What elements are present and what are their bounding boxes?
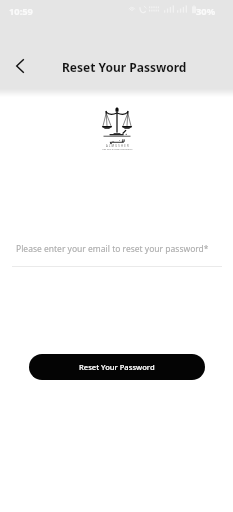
button[interactable]: Please enter your email to reset your pa… — [12, 243, 222, 267]
staticText: 10:59 — [9, 5, 33, 18]
staticText: Law Firm & Legal Consultancy — [102, 148, 133, 151]
staticText: Reset Your Password — [79, 362, 155, 372]
staticText: Please enter your email to reset your pa… — [16, 243, 209, 255]
staticText: Reset Your Password — [62, 59, 187, 75]
staticText: A L M U S H E R — [106, 144, 129, 148]
staticText: 30% — [196, 5, 216, 18]
button[interactable]: Back — [6, 52, 34, 80]
button[interactable]: Reset Your Password — [29, 354, 205, 380]
